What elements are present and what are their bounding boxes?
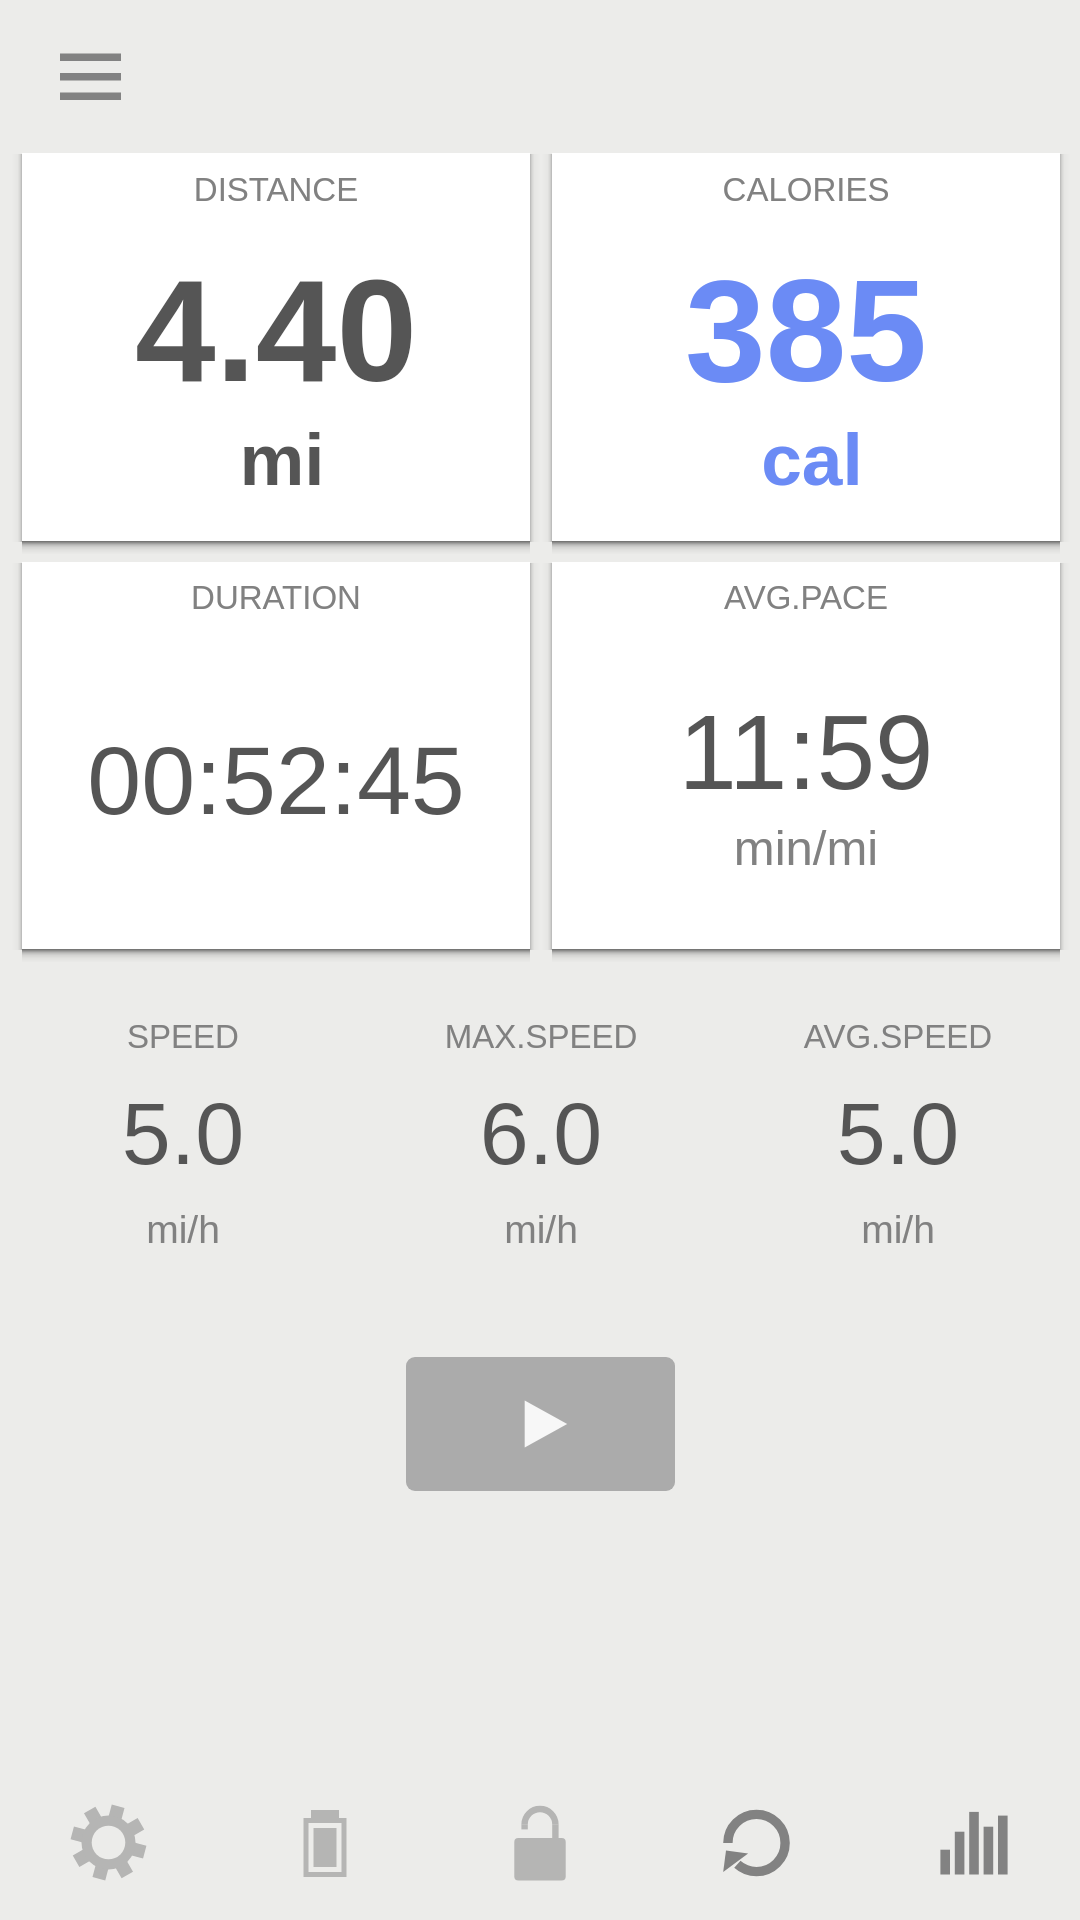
staticText: 00:52:45 [22, 726, 530, 834]
staticText: 6.0 [371, 1084, 711, 1182]
staticText: DISTANCE [22, 171, 530, 208]
staticText: 5.0 [728, 1084, 1068, 1182]
staticText: min/mi [552, 821, 1060, 876]
button[interactable]: Statistics [924, 1792, 1024, 1892]
button[interactable]: Start [406, 1357, 675, 1491]
staticText: DURATION [22, 579, 530, 616]
staticText: mi/h [728, 1208, 1068, 1252]
button[interactable]: Reset [707, 1792, 807, 1892]
button[interactable]: SPEED [13, 1012, 353, 1262]
staticText: 5.0 [13, 1084, 353, 1182]
staticText: SPEED [13, 1018, 353, 1055]
button[interactable]: DISTANCE [22, 153, 530, 541]
staticText: mi [28, 419, 536, 501]
staticText: AVG.PACE [552, 579, 1060, 616]
button[interactable]: MAX.SPEED [371, 1012, 711, 1262]
staticText: mi/h [13, 1208, 353, 1252]
button[interactable]: Battery [275, 1792, 375, 1892]
button[interactable]: Settings [58, 1792, 158, 1892]
staticText: CALORIES [552, 171, 1060, 208]
button[interactable]: Menu [44, 34, 136, 118]
button[interactable]: DURATION [22, 562, 530, 949]
button[interactable]: AVG.PACE [552, 562, 1060, 949]
button[interactable]: Lock [490, 1792, 590, 1892]
staticText: 4.40 [22, 250, 530, 412]
button[interactable]: AVG.SPEED [728, 1012, 1068, 1262]
staticText: cal [558, 419, 1066, 501]
staticText: MAX.SPEED [371, 1018, 711, 1055]
staticText: 11:59 [552, 694, 1060, 811]
staticText: mi/h [371, 1208, 711, 1252]
button[interactable]: CALORIES [552, 153, 1060, 541]
staticText: 385 [552, 250, 1060, 412]
staticText: AVG.SPEED [728, 1018, 1068, 1055]
